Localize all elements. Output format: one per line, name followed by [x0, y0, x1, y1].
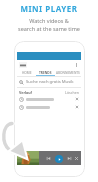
button[interactable]: Previous — [46, 156, 51, 161]
button[interactable]: App logo — [19, 62, 27, 68]
button[interactable]: Remove — [75, 105, 79, 109]
staticText: ABONNEMENTS — [56, 71, 80, 75]
button[interactable]: Remove — [75, 97, 79, 101]
button[interactable]: HOME — [17, 69, 36, 76]
staticText: Löschen — [65, 90, 79, 95]
button[interactable]: Next — [67, 156, 72, 161]
button[interactable]: Suche nach gratis Musik — [19, 77, 81, 87]
button[interactable]: Close — [74, 156, 79, 161]
button[interactable]: Play — [55, 155, 63, 163]
button[interactable]: TRENDS — [36, 69, 55, 76]
button[interactable]: Remove — [19, 95, 79, 103]
staticText: MINI PLAYER — [20, 3, 78, 14]
staticText: search at the same time — [18, 25, 80, 32]
staticText: TRENDS — [39, 71, 52, 75]
button[interactable]: Remove — [19, 103, 79, 111]
button[interactable]: Previous — [17, 151, 81, 165]
staticText: Suche nach gratis Musik — [26, 79, 74, 85]
staticText: Watch videos & — [29, 17, 69, 24]
button[interactable]: ABONNEMENTS — [55, 69, 81, 76]
staticText: Verlauf — [19, 90, 32, 95]
staticText: HOME — [22, 71, 32, 75]
